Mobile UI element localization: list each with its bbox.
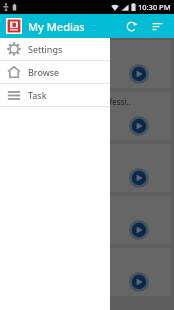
- button[interactable]: Advanced Composition,..: [3, 196, 171, 244]
- button[interactable]: Refresh: [120, 15, 142, 37]
- staticText: Browse: [28, 66, 60, 78]
- staticText: Settings: [28, 43, 63, 55]
- button[interactable]: Browse: [0, 61, 110, 83]
- button[interactable]: The Secret History..: [3, 40, 171, 88]
- staticText: 10:30 PM: [138, 2, 171, 12]
- button[interactable]: Play: [129, 64, 149, 84]
- button[interactable]: Introduction to Dynam..: [3, 144, 171, 192]
- button[interactable]: Play: [129, 168, 149, 188]
- staticText: Task: [28, 89, 47, 101]
- staticText: My Medias: [28, 19, 85, 34]
- button[interactable]: Task: [0, 84, 110, 106]
- button[interactable]: App icon: [6, 18, 22, 34]
- button[interactable]: Advanced Composition,..: [3, 248, 171, 296]
- button[interactable]: Sort: [146, 15, 168, 37]
- button[interactable]: Play: [129, 116, 149, 136]
- button[interactable]: Play: [129, 220, 149, 240]
- button[interactable]: Play: [129, 272, 149, 292]
- button[interactable]: Settings: [0, 38, 110, 60]
- button[interactable]: A song of Ice and Fire - Professi..: [3, 92, 171, 140]
- staticText: The Secret History..: [9, 44, 82, 55]
- staticText: A song of Ice and Fire - Professi..: [9, 96, 131, 107]
